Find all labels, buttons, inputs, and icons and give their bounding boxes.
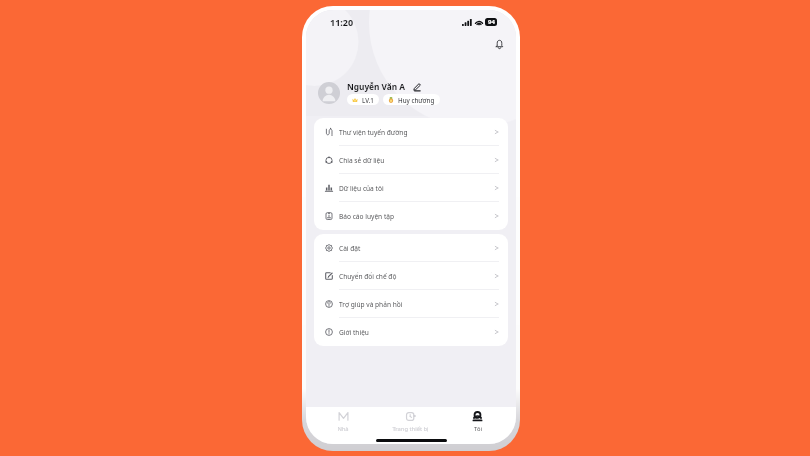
button[interactable]: LV.1	[347, 94, 379, 105]
staticText: Trang thiết bị	[392, 425, 429, 433]
button[interactable]: Cài đặt	[314, 234, 508, 262]
staticText: Dữ liệu của tôi	[339, 184, 384, 193]
button[interactable]: Thư viện tuyến đường	[314, 118, 508, 146]
button[interactable]: Huy chương	[383, 94, 440, 105]
staticText: Nhà	[337, 425, 349, 433]
staticText: 11:20	[330, 16, 354, 28]
button[interactable]: Tôi	[444, 407, 511, 436]
staticText: Nguyễn Văn A	[347, 81, 406, 92]
button[interactable]: Trang thiết bị	[377, 407, 444, 436]
staticText: Cài đặt	[339, 244, 361, 253]
button[interactable]: Chia sẻ dữ liệu	[314, 146, 508, 174]
button[interactable]: Notifications	[490, 35, 508, 53]
staticText: Tôi	[474, 425, 482, 433]
button[interactable]: Giới thiệu	[314, 318, 508, 346]
staticText: Chia sẻ dữ liệu	[339, 156, 385, 165]
staticText: Trợ giúp và phản hồi	[339, 300, 403, 309]
staticText: Chuyển đổi chế độ	[339, 272, 397, 281]
button[interactable]: Dữ liệu của tôi	[314, 174, 508, 202]
staticText: Giới thiệu	[339, 328, 369, 337]
staticText: 94	[488, 18, 495, 26]
staticText: Huy chương	[398, 96, 435, 104]
staticText: LV.1	[362, 96, 374, 104]
button[interactable]: Trợ giúp và phản hồi	[314, 290, 508, 318]
button[interactable]: Nhà	[309, 407, 377, 436]
button[interactable]: Edit name	[412, 82, 422, 92]
staticText: Báo cáo luyện tập	[339, 212, 395, 221]
staticText: Thư viện tuyến đường	[339, 128, 408, 137]
button[interactable]: Báo cáo luyện tập	[314, 202, 508, 230]
button[interactable]: Chuyển đổi chế độ	[314, 262, 508, 290]
